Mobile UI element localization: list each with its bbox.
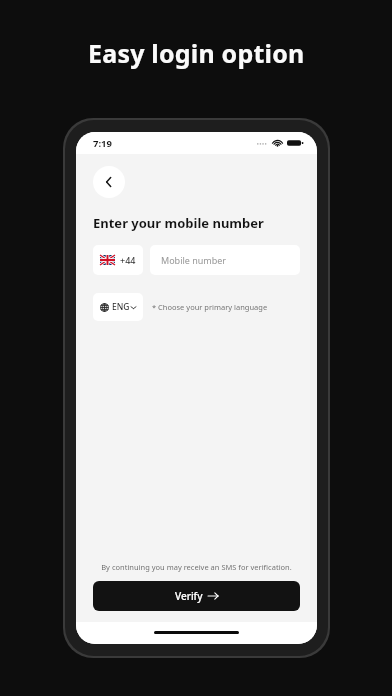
staticText: Verify bbox=[175, 589, 203, 603]
button[interactable]: +44 bbox=[93, 245, 143, 275]
button[interactable]: ENG bbox=[93, 293, 143, 321]
staticText: ENG bbox=[112, 301, 130, 313]
staticText: Mobile number bbox=[161, 254, 227, 266]
staticText: 7:19 bbox=[93, 137, 112, 150]
staticText: Easy login option bbox=[88, 36, 305, 70]
staticText: Enter your mobile number bbox=[93, 214, 264, 232]
button[interactable]: Back bbox=[93, 166, 125, 198]
staticText: * Choose your primary language bbox=[152, 302, 268, 312]
staticText: +44 bbox=[120, 254, 136, 266]
staticText: By continuing you may receive an SMS for… bbox=[88, 562, 305, 572]
button[interactable]: Verify bbox=[93, 581, 300, 611]
button[interactable]: Mobile number bbox=[150, 245, 300, 275]
